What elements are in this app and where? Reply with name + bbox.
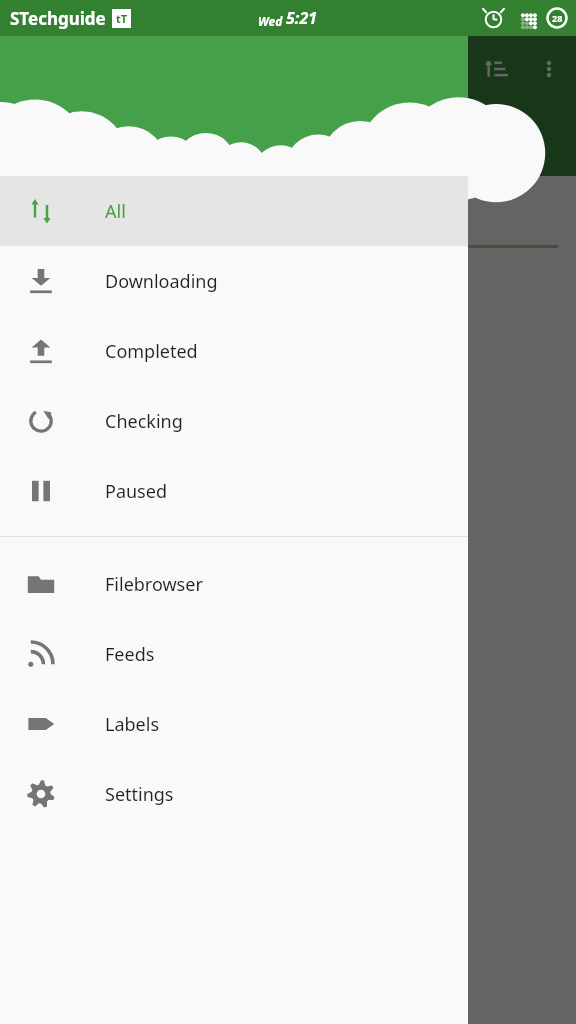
- staticText: Labels: [105, 712, 160, 737]
- staticText: Paused: [105, 479, 167, 504]
- button[interactable]: Filebrowser: [0, 549, 468, 619]
- staticText: Checking: [105, 409, 183, 434]
- button[interactable]: More options: [534, 54, 564, 84]
- button[interactable]: Settings: [0, 759, 468, 829]
- staticText: Downloaded: 0 B: [18, 320, 154, 343]
- button[interactable]: Feeds: [0, 619, 468, 689]
- staticText: Seeds: 0/0 Peers: 0/5: [18, 262, 193, 285]
- staticText: Feeds: [105, 642, 155, 667]
- staticText: 28: [552, 12, 563, 24]
- staticText: Filebrowser: [105, 572, 203, 597]
- button[interactable]: Sort: [482, 54, 512, 84]
- staticText: Settings: [105, 782, 174, 807]
- staticText: tT: [116, 11, 128, 26]
- button[interactable]: Completed: [0, 316, 468, 386]
- button[interactable]: Labels: [0, 689, 468, 759]
- button[interactable]: Downloading: [0, 246, 468, 316]
- staticText: ubuntu 2015 hd: [18, 190, 181, 219]
- staticText: Wed: [258, 13, 286, 29]
- staticText: STechguide: [10, 7, 106, 30]
- button[interactable]: Paused: [0, 456, 468, 526]
- button[interactable]: All: [0, 176, 468, 246]
- staticText: Up: 0 B/s Down: 0 B/s: [18, 291, 198, 314]
- staticText: Completed: [105, 339, 198, 364]
- button[interactable]: Checking: [0, 386, 468, 456]
- staticText: Downloading: [105, 269, 218, 294]
- staticText: All: [105, 199, 126, 224]
- staticText: 5:21: [286, 7, 318, 29]
